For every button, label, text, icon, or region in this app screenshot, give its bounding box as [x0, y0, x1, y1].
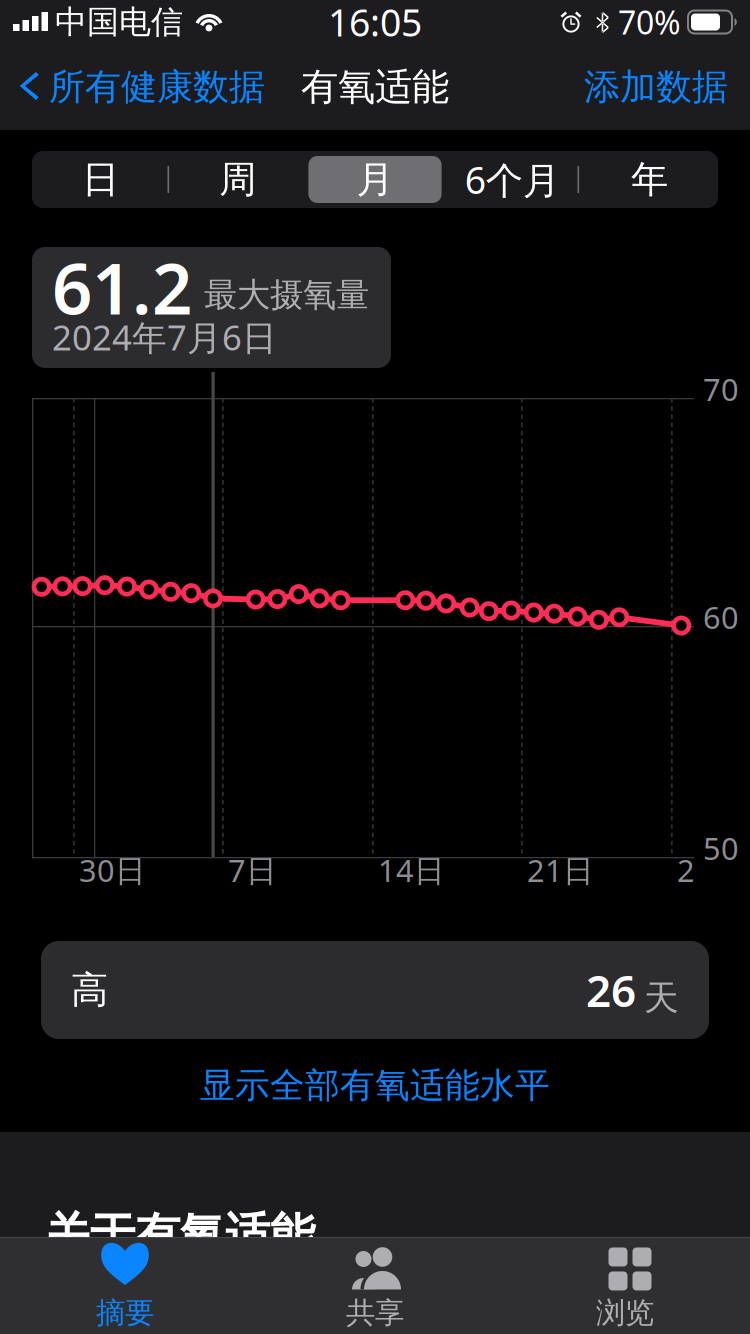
staticText: 添加数据	[584, 65, 728, 109]
staticText: 6个月	[465, 155, 560, 204]
staticText: 日	[82, 157, 119, 202]
staticText: 30日	[79, 850, 146, 890]
staticText: 摘要	[96, 1295, 154, 1331]
staticText: 有氧适能	[301, 64, 449, 110]
staticText: 70%	[618, 1, 681, 43]
staticText: 浏览	[596, 1295, 654, 1331]
staticText: 2	[677, 850, 695, 890]
button[interactable]: 周	[169, 151, 306, 208]
button[interactable]: 6个月	[444, 151, 581, 208]
button[interactable]: 显示全部有氧适能水平	[0, 1039, 750, 1132]
staticText: 天	[644, 977, 679, 1019]
button[interactable]: 浏览	[500, 1238, 750, 1334]
staticText: 14日	[378, 850, 445, 890]
button[interactable]: 月	[306, 151, 444, 208]
button[interactable]: 日	[32, 151, 169, 208]
button[interactable]: 添加数据	[584, 55, 750, 119]
staticText: 61.2	[52, 240, 192, 334]
staticText: 16:05	[328, 0, 422, 47]
button[interactable]: 年	[581, 151, 718, 208]
staticText: 7日	[228, 850, 277, 890]
staticText: 21日	[527, 850, 594, 890]
button[interactable]: 共享	[250, 1238, 500, 1334]
staticText: 60	[703, 597, 739, 637]
button[interactable]: 所有健康数据	[0, 55, 265, 119]
staticText: 年	[631, 157, 668, 202]
staticText: 50	[703, 828, 739, 868]
staticText: 2024年7月6日	[52, 314, 277, 360]
staticText: 月	[356, 157, 393, 202]
staticText: 26	[586, 961, 636, 1019]
staticText: 中国电信	[55, 2, 183, 42]
staticText: 共享	[346, 1295, 404, 1331]
button[interactable]: 摘要	[0, 1238, 250, 1334]
staticText: 高	[71, 967, 108, 1013]
staticText: 最大摄氧量	[204, 274, 369, 315]
staticText: 显示全部有氧适能水平	[200, 1064, 550, 1107]
staticText: 所有健康数据	[49, 65, 265, 109]
button[interactable]: 高	[41, 941, 709, 1039]
staticText: 周	[219, 157, 256, 202]
staticText: 关于有氧适能	[45, 1207, 315, 1263]
staticText: 70	[703, 369, 739, 409]
